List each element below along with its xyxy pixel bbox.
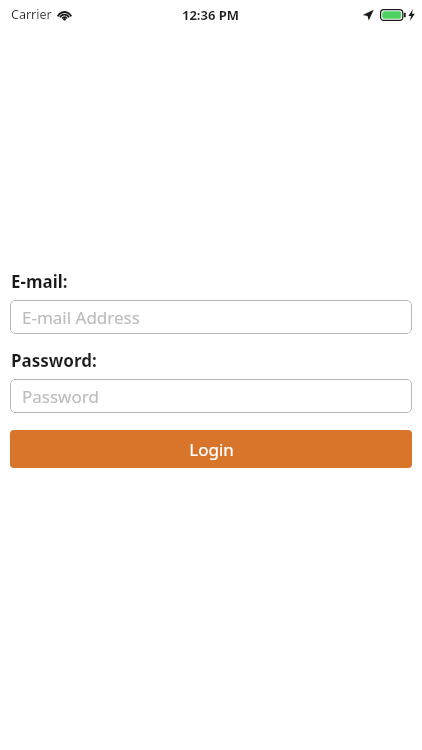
staticText: Carrier (11, 6, 52, 23)
staticText: E-mail Address (22, 306, 140, 329)
staticText: Password: (11, 349, 97, 372)
button[interactable]: Login (10, 430, 412, 468)
staticText: Password (22, 385, 99, 408)
other: Battery full (380, 9, 406, 21)
button[interactable]: Password (10, 379, 412, 413)
staticText: E-mail: (11, 270, 68, 293)
other: Charging (408, 9, 415, 21)
other: Location services active (362, 9, 374, 21)
button[interactable]: E-mail Address (10, 300, 412, 334)
staticText: Login (189, 438, 234, 461)
staticText: 12:36 PM (182, 6, 240, 24)
